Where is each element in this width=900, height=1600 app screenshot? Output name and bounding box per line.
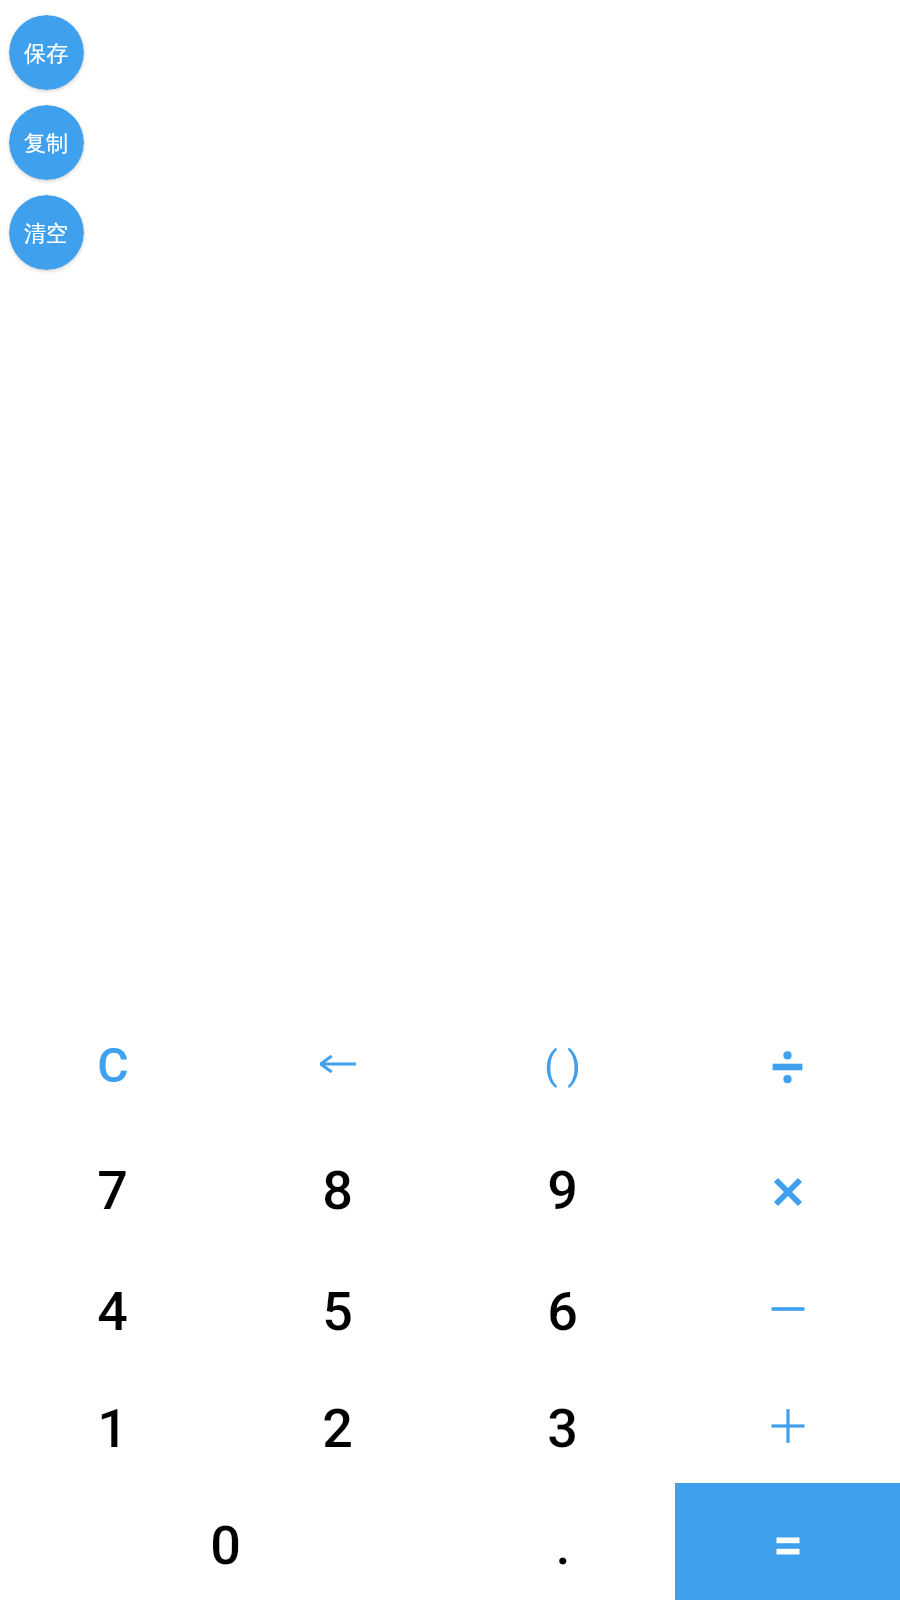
button[interactable]: ( ): [450, 1015, 675, 1132]
button[interactable]: C: [0, 1015, 225, 1132]
button[interactable]: 1: [0, 1366, 225, 1483]
button[interactable]: 3: [450, 1366, 675, 1483]
button[interactable]: 4: [0, 1249, 225, 1366]
button[interactable]: 保存: [9, 15, 84, 90]
button[interactable]: .: [450, 1483, 675, 1600]
staticText: 0: [210, 1514, 241, 1577]
button[interactable]: 清空: [9, 195, 84, 270]
staticText: 8: [322, 1159, 353, 1222]
staticText: ( ): [544, 1043, 581, 1089]
button[interactable]: Equals: [675, 1483, 900, 1600]
button[interactable]: 8: [225, 1132, 450, 1249]
button[interactable]: 6: [450, 1249, 675, 1366]
staticText: .: [555, 1514, 571, 1577]
button[interactable]: Plus: [675, 1366, 900, 1483]
staticText: 7: [97, 1159, 128, 1222]
button[interactable]: Backspace: [225, 1015, 450, 1132]
button[interactable]: Multiply: [675, 1132, 900, 1249]
staticText: 6: [547, 1280, 578, 1343]
button[interactable]: 7: [0, 1132, 225, 1249]
staticText: 4: [97, 1280, 128, 1343]
button[interactable]: 0: [0, 1483, 450, 1600]
staticText: 3: [547, 1397, 578, 1460]
button[interactable]: 5: [225, 1249, 450, 1366]
staticText: 5: [322, 1280, 353, 1343]
staticText: 9: [547, 1159, 578, 1222]
staticText: 2: [322, 1397, 353, 1460]
button[interactable]: 2: [225, 1366, 450, 1483]
button[interactable]: Minus: [675, 1249, 900, 1366]
staticText: C: [97, 1037, 129, 1093]
staticText: 复制: [24, 130, 68, 158]
staticText: 保存: [24, 40, 68, 68]
button[interactable]: Divide: [675, 1015, 900, 1132]
staticText: 1: [97, 1397, 128, 1460]
button[interactable]: 9: [450, 1132, 675, 1249]
button[interactable]: 复制: [9, 105, 84, 180]
staticText: 清空: [24, 220, 68, 248]
